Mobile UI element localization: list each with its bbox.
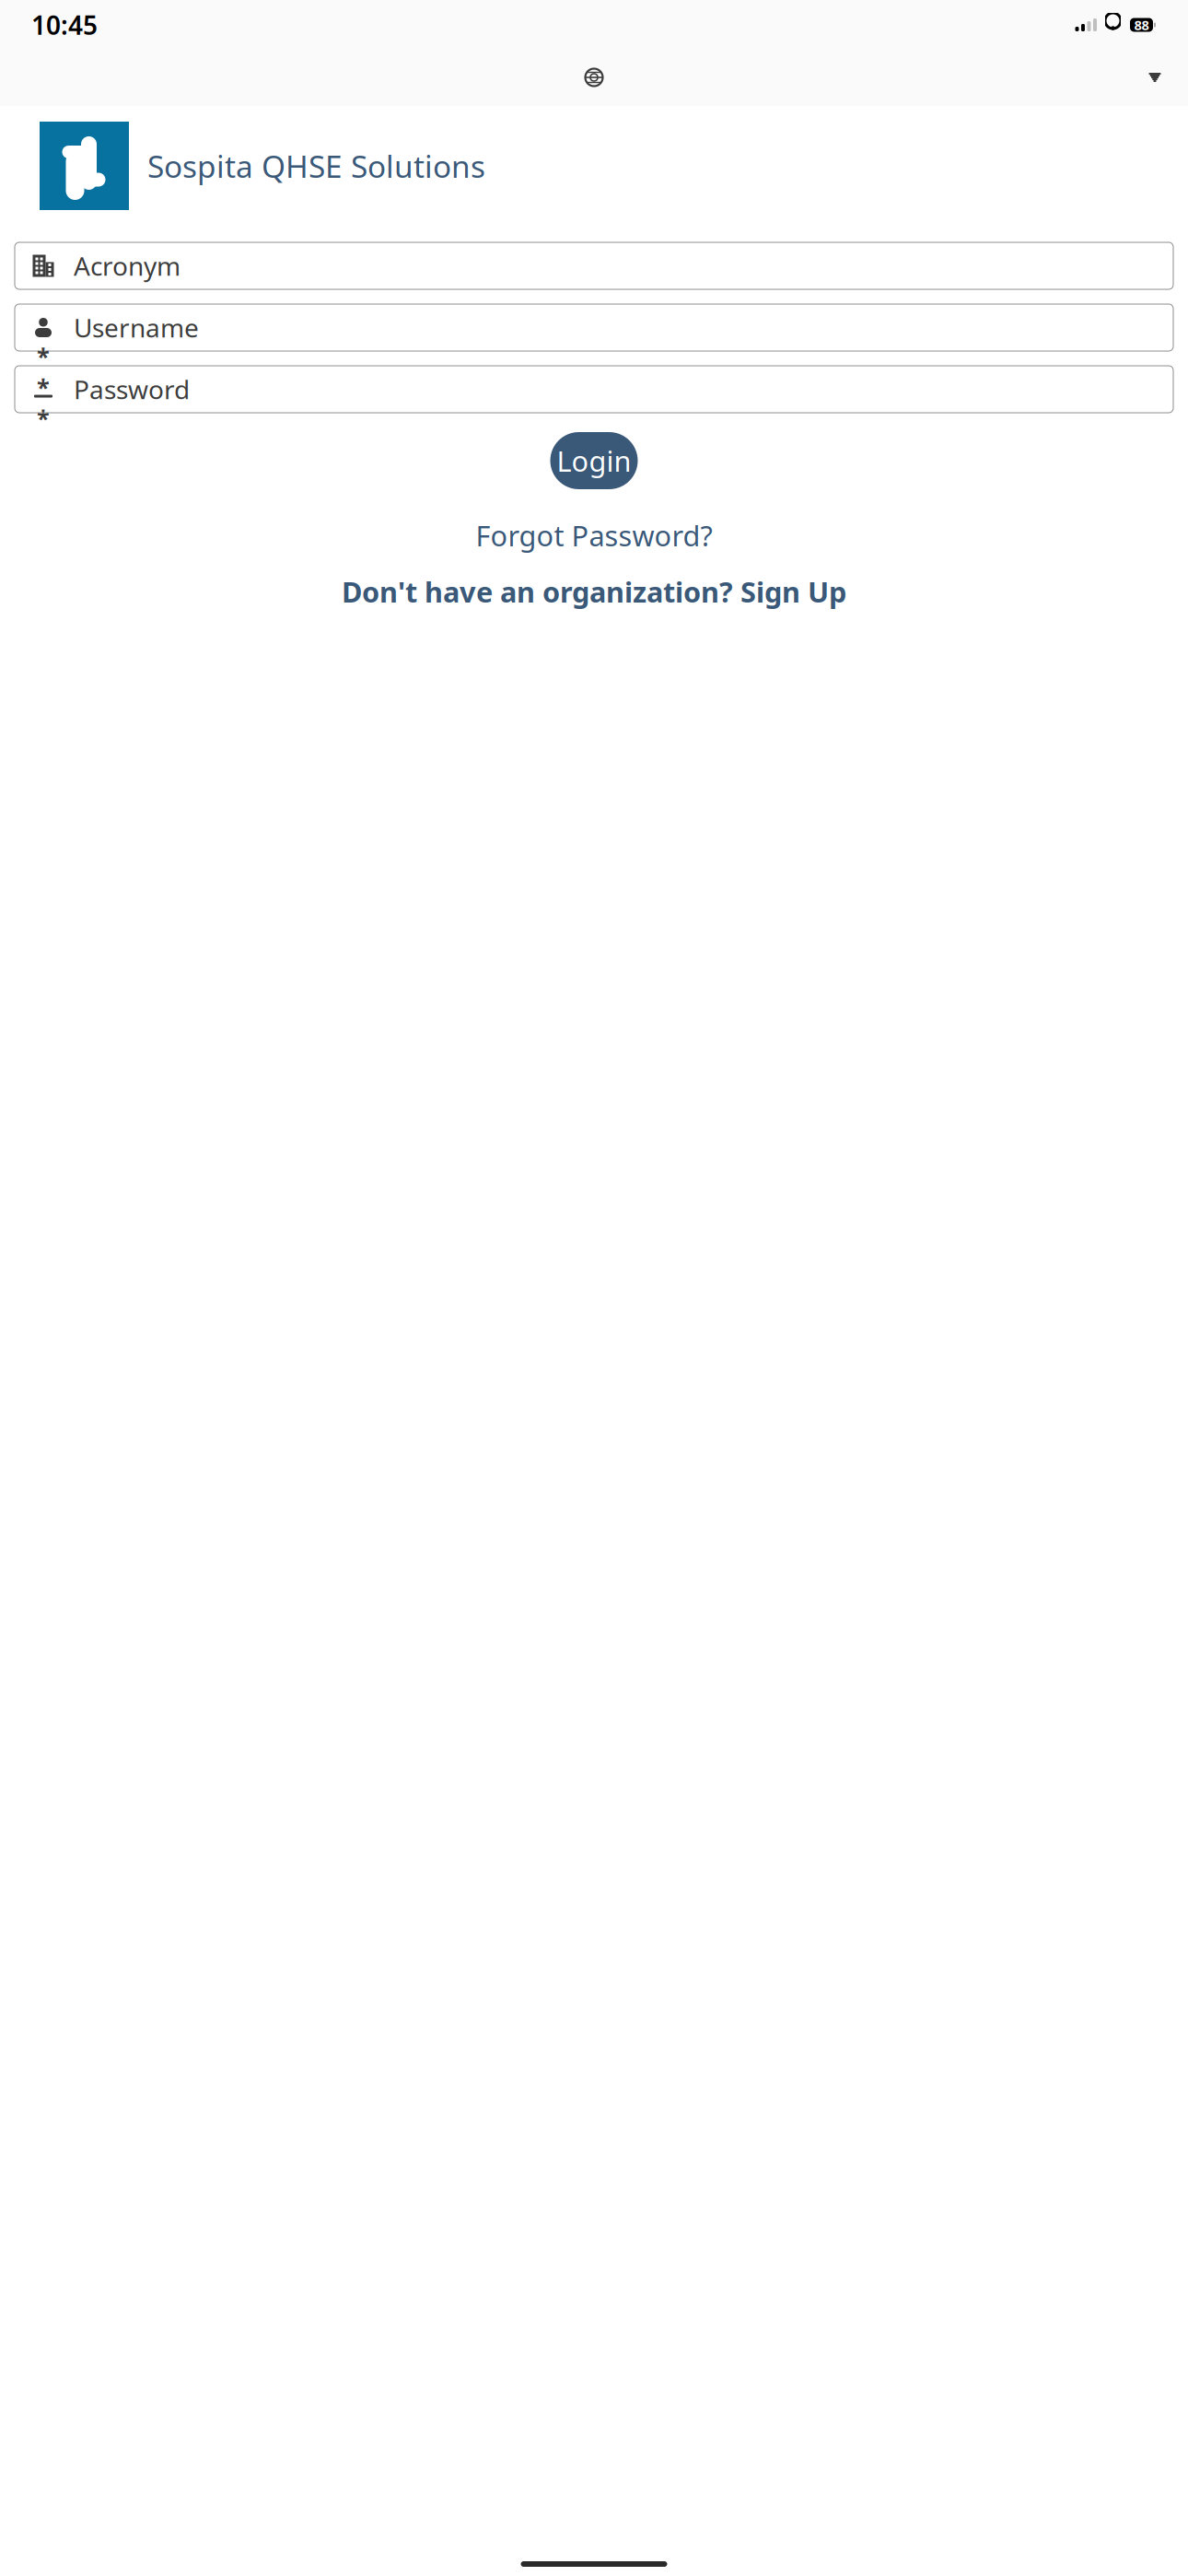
- staticText: Acronym: [74, 249, 181, 283]
- staticText: 10:45: [31, 8, 98, 42]
- button[interactable]: Login: [550, 432, 638, 489]
- staticText: Sospita QHSE Solutions: [147, 145, 485, 186]
- button[interactable]: Forgot Password?: [476, 517, 712, 554]
- button[interactable]: Select language: [1135, 57, 1175, 98]
- staticText: 88: [1134, 16, 1149, 34]
- staticText: ***: [37, 340, 50, 433]
- staticText: Login: [557, 442, 631, 479]
- button[interactable]: Don't have an organization? Sign Up: [342, 573, 846, 610]
- staticText: Password: [74, 372, 190, 406]
- button[interactable]: Language: [574, 57, 614, 98]
- staticText: Don't have an organization? Sign Up: [342, 573, 846, 610]
- staticText: Forgot Password?: [476, 516, 712, 554]
- staticText: Username: [74, 310, 199, 345]
